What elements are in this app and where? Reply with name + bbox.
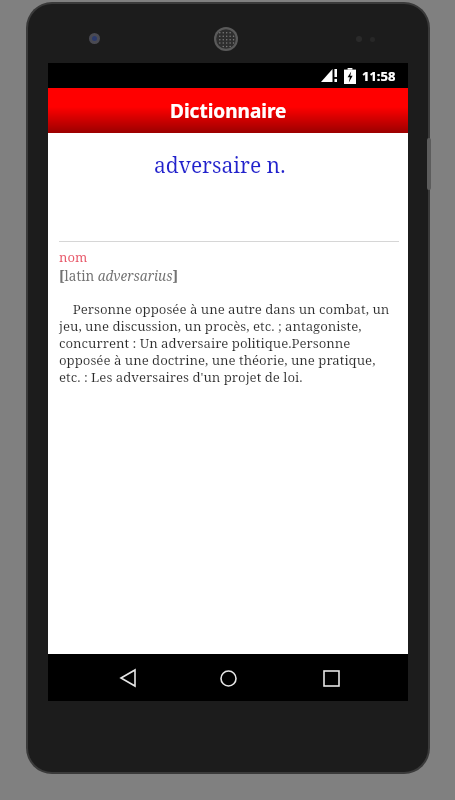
- staticText: adversaire n.: [154, 151, 286, 180]
- staticText: 11:58: [362, 67, 396, 85]
- staticText: [latin adversarius]: [59, 267, 179, 285]
- button[interactable]: Recent apps: [311, 658, 351, 698]
- staticText: Personne opposée à une autre dans un com…: [59, 300, 398, 386]
- button[interactable]: Back: [108, 658, 148, 698]
- button[interactable]: Home: [208, 658, 248, 698]
- staticText: Dictionnaire: [170, 98, 287, 124]
- staticText: nom: [59, 248, 88, 266]
- button[interactable]: Dictionnaire: [48, 88, 408, 133]
